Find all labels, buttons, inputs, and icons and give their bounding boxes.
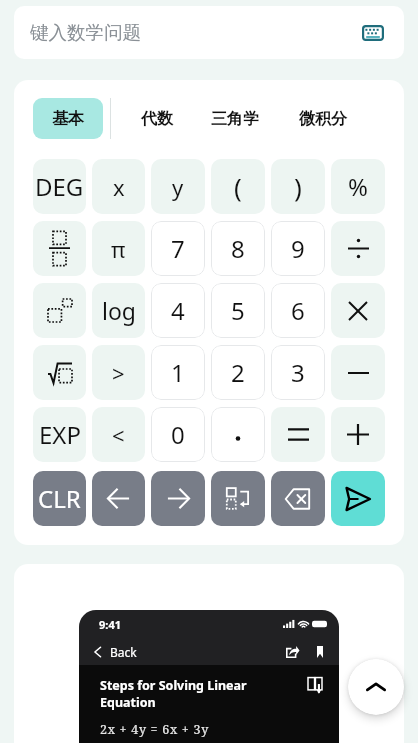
button[interactable]: Scroll to top	[348, 659, 404, 715]
button[interactable]: >	[92, 345, 145, 400]
button[interactable]	[33, 283, 86, 338]
button[interactable]: 三角学	[203, 98, 267, 139]
button[interactable]: 代数	[133, 98, 181, 139]
staticText: 代数	[141, 109, 173, 129]
staticText: 9	[291, 232, 305, 265]
button[interactable]: log	[92, 283, 145, 338]
staticText: 7	[171, 232, 185, 265]
button[interactable]: y	[151, 159, 205, 214]
button[interactable]	[33, 221, 86, 276]
button[interactable]	[331, 283, 385, 338]
staticText: x	[113, 172, 125, 202]
staticText: 9:41	[99, 617, 121, 632]
button[interactable]: 3	[271, 345, 325, 400]
button[interactable]: 9	[271, 221, 325, 276]
staticText: 微积分	[299, 109, 347, 129]
button[interactable]	[331, 471, 385, 526]
button[interactable]: EXP	[33, 407, 86, 462]
staticText: log	[102, 295, 136, 326]
button[interactable]: π	[92, 221, 145, 276]
button[interactable]: )	[271, 159, 325, 214]
button[interactable]: Keyboard	[358, 18, 388, 48]
staticText: CLR	[38, 482, 81, 515]
staticText: %	[348, 170, 368, 203]
button[interactable]	[331, 407, 385, 462]
button[interactable]: 6	[271, 283, 325, 338]
button[interactable]: 基本	[33, 98, 103, 139]
button[interactable]: x	[92, 159, 145, 214]
button[interactable]: %	[331, 159, 385, 214]
staticText: 6	[291, 294, 305, 327]
staticText: <	[112, 420, 125, 450]
staticText: 0	[171, 418, 185, 451]
staticText: 4	[171, 294, 185, 327]
staticText: 2x + 4y = 6x + 3y	[100, 721, 209, 738]
button[interactable]	[271, 407, 325, 462]
staticText: 1	[171, 356, 185, 389]
button[interactable]	[92, 471, 145, 526]
staticText: 8	[231, 232, 245, 265]
staticText: 三角学	[211, 109, 259, 129]
staticText: )	[294, 169, 302, 204]
staticText: EXP	[39, 418, 81, 451]
button[interactable]: 5	[211, 283, 265, 338]
button[interactable]: 8	[211, 221, 265, 276]
button[interactable]: 1	[151, 345, 205, 400]
staticText: Steps for Solving Linear Equation	[100, 677, 308, 710]
staticText: >	[112, 358, 125, 388]
button[interactable]: 4	[151, 283, 205, 338]
staticText: 2	[231, 356, 245, 389]
button[interactable]: 微积分	[291, 98, 355, 139]
button[interactable]: CLR	[33, 471, 86, 526]
button[interactable]	[211, 471, 265, 526]
button[interactable]: <	[92, 407, 145, 462]
button[interactable]: DEG	[33, 159, 86, 214]
button[interactable]: (	[211, 159, 265, 214]
button[interactable]: 7	[151, 221, 205, 276]
button[interactable]: 2	[211, 345, 265, 400]
staticText: 3	[291, 356, 305, 389]
button[interactable]	[211, 407, 265, 462]
staticText: Back	[110, 644, 137, 660]
staticText: π	[111, 234, 126, 264]
button[interactable]	[331, 221, 385, 276]
staticText: 键入数学问题	[30, 21, 141, 44]
staticText: DEG	[35, 170, 84, 203]
button[interactable]: 0	[151, 407, 205, 462]
button[interactable]	[151, 471, 205, 526]
button[interactable]	[33, 345, 86, 400]
button[interactable]	[331, 345, 385, 400]
staticText: (	[234, 169, 242, 204]
button[interactable]	[271, 471, 325, 526]
staticText: 5	[231, 294, 245, 327]
button[interactable]: 键入数学问题	[14, 6, 404, 59]
staticText: y	[172, 172, 184, 202]
staticText: 基本	[52, 109, 84, 129]
